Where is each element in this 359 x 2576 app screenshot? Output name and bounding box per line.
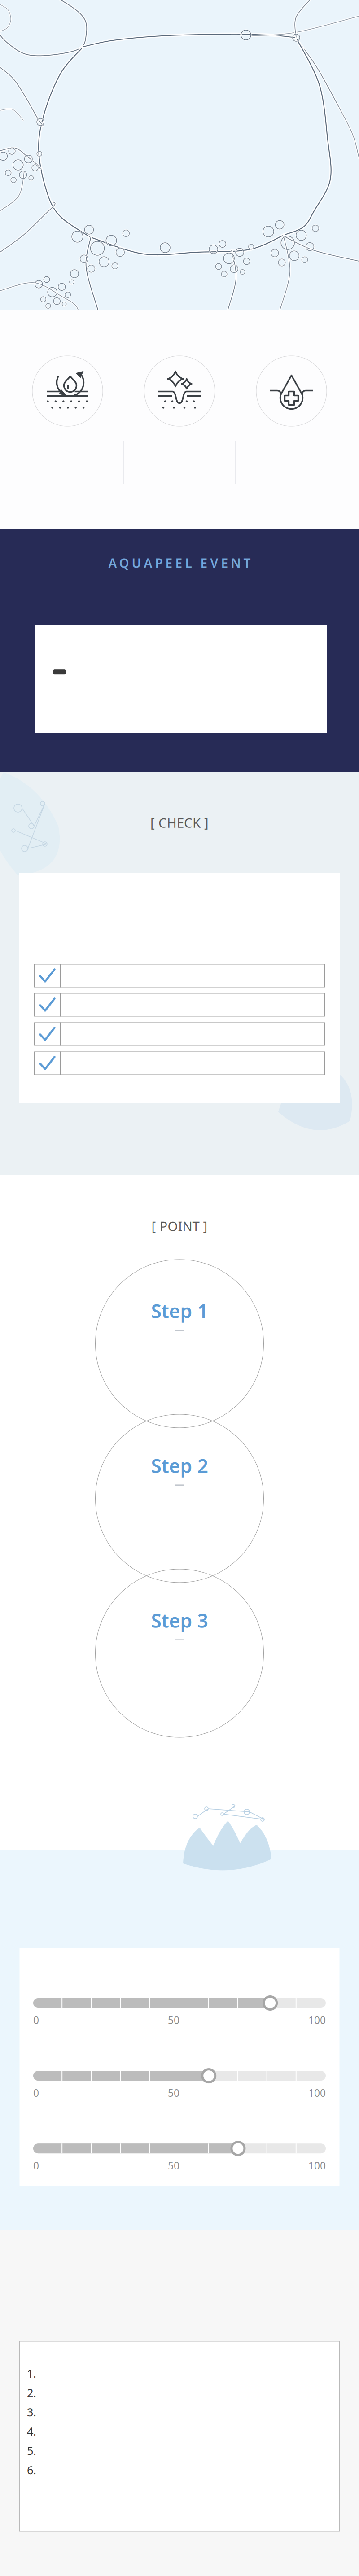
staticText: 100 [308,2013,326,2027]
staticText: 0 [33,2086,39,2100]
staticText: 0 [33,2159,39,2172]
button[interactable] [34,964,325,987]
staticText: [ POINT ] [151,1217,208,1235]
staticText: 0 [33,2013,39,2027]
staticText: AQUAPEEL EVENT [108,555,251,571]
staticText: 5. [27,2443,36,2458]
staticText: Step 3 [151,1608,208,1633]
staticText: 6. [27,2462,36,2477]
staticText: 100 [308,2086,326,2100]
staticText: 50 [168,2086,179,2100]
staticText: 100 [308,2159,326,2172]
staticText: Step 1 [151,1298,208,1324]
staticText: [ CHECK ] [150,814,209,831]
staticText: 4. [27,2424,36,2439]
staticText: 3. [27,2404,36,2420]
staticText: 2. [27,2385,36,2400]
staticText: 1. [27,2366,36,2381]
button[interactable] [34,1023,325,1045]
staticText: 50 [168,2013,179,2027]
staticText: Step 2 [151,1453,208,1478]
staticText: 50 [168,2159,179,2172]
button[interactable] [34,993,325,1016]
button[interactable] [34,1052,325,1075]
